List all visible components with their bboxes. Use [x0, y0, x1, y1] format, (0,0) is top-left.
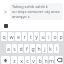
staticText: i: [48, 33, 50, 40]
button[interactable]: Forward: [1, 8, 9, 16]
button[interactable]: p: [58, 32, 63, 41]
staticText: x: [20, 57, 23, 64]
button[interactable]: j: [42, 44, 47, 53]
staticText: n: [44, 57, 48, 64]
button[interactable]: o: [52, 32, 57, 41]
staticText: w: [9, 33, 14, 40]
staticText: h: [37, 45, 41, 52]
button[interactable]: v: [31, 56, 36, 64]
button[interactable]: n: [43, 56, 48, 64]
button[interactable]: r: [22, 32, 27, 41]
button[interactable]: d: [18, 44, 23, 53]
staticText: g: [31, 45, 35, 52]
button[interactable]: x: [18, 56, 24, 64]
button[interactable]: u: [40, 32, 45, 41]
button[interactable]: k: [48, 44, 53, 53]
button[interactable]: t: [28, 32, 33, 41]
button[interactable]: b: [37, 56, 42, 64]
staticText: b: [38, 57, 42, 64]
staticText: d: [19, 45, 23, 52]
button[interactable]: s: [12, 44, 17, 53]
staticText: l: [56, 45, 58, 52]
staticText: a: [7, 45, 10, 52]
button[interactable]: h: [36, 44, 41, 53]
staticText: c: [26, 57, 29, 64]
button[interactable]: g: [30, 44, 35, 53]
button[interactable]: e: [15, 32, 21, 41]
button[interactable]: w: [8, 32, 14, 41]
button[interactable]: l: [54, 44, 59, 53]
button[interactable]: f: [24, 44, 29, 53]
button[interactable]: z: [11, 56, 17, 64]
staticText: v: [32, 57, 35, 64]
staticText: q: [2, 33, 6, 40]
staticText: y: [35, 33, 38, 40]
button[interactable]: Emoji: [4, 24, 8, 28]
staticText: t: [30, 33, 32, 40]
button[interactable]: Taking sahib sahib k ou teiqe asmuner ut…: [12, 4, 62, 19]
staticText: f: [26, 45, 28, 52]
button[interactable]: Backspace: [55, 56, 63, 64]
button[interactable]: i: [46, 32, 51, 41]
staticText: >: [4, 9, 7, 16]
button[interactable]: q: [1, 32, 7, 41]
staticText: o: [53, 33, 57, 40]
staticText: j: [44, 45, 46, 52]
button[interactable]: c: [25, 56, 30, 64]
button[interactable]: Shift: [1, 56, 10, 64]
button[interactable]: a: [6, 44, 11, 53]
staticText: e: [17, 33, 20, 40]
staticText: m: [49, 57, 54, 64]
staticText: p: [59, 33, 63, 40]
staticText: r: [23, 33, 26, 40]
staticText: s: [13, 45, 16, 52]
staticText: u: [41, 33, 45, 40]
staticText: Taking sahib sahib k ou teiqe asmuner ut…: [12, 4, 60, 19]
staticText: z: [13, 57, 16, 64]
staticText: k: [49, 45, 52, 52]
button[interactable]: y: [34, 32, 39, 41]
button[interactable]: m: [49, 56, 54, 64]
